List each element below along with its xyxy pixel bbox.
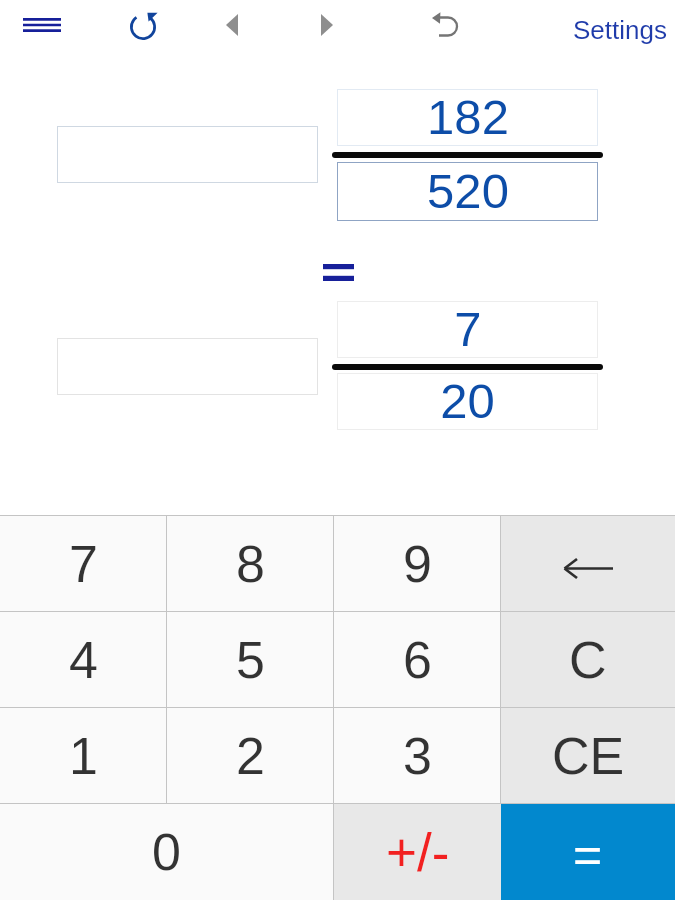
staticText: Settings xyxy=(573,15,667,44)
button[interactable]: Undo xyxy=(419,1,471,49)
button[interactable]: 520 xyxy=(337,162,598,221)
button[interactable]: 5 xyxy=(167,612,333,707)
button[interactable]: 6 xyxy=(334,612,500,707)
staticText: 4 xyxy=(69,631,98,689)
button[interactable]: CE xyxy=(501,708,675,803)
staticText: 7 xyxy=(454,302,482,357)
button[interactable] xyxy=(57,338,318,395)
staticText: +/- xyxy=(386,823,450,882)
staticText: 2 xyxy=(236,727,265,785)
button[interactable]: 0 xyxy=(0,804,333,900)
staticText: 182 xyxy=(427,90,509,145)
staticText: = xyxy=(573,827,603,883)
button[interactable]: 4 xyxy=(0,612,166,707)
button[interactable]: 7 xyxy=(337,301,598,358)
button[interactable]: 7 xyxy=(0,516,166,611)
staticText: CE xyxy=(552,727,625,785)
staticText: 20 xyxy=(440,374,495,429)
staticText: 520 xyxy=(427,164,509,219)
button[interactable]: Settings xyxy=(573,4,667,54)
staticText: 6 xyxy=(403,631,432,689)
button[interactable]: 2 xyxy=(167,708,333,803)
staticText: 1 xyxy=(69,727,98,785)
staticText: 7 xyxy=(69,535,98,593)
staticText: 9 xyxy=(403,535,432,593)
button[interactable]: Next xyxy=(301,1,353,49)
button[interactable] xyxy=(57,126,318,183)
staticText: 3 xyxy=(403,727,432,785)
staticText: 8 xyxy=(236,535,265,593)
button[interactable]: 182 xyxy=(337,89,598,146)
button[interactable]: 8 xyxy=(167,516,333,611)
button[interactable]: C xyxy=(501,612,675,707)
button[interactable]: 1 xyxy=(0,708,166,803)
button[interactable]: Backspace xyxy=(501,516,675,611)
button[interactable]: 20 xyxy=(337,373,598,430)
button[interactable]: 3 xyxy=(334,708,500,803)
button[interactable]: = xyxy=(501,804,675,900)
staticText: 5 xyxy=(236,631,265,689)
button[interactable]: 9 xyxy=(334,516,500,611)
button[interactable]: Previous xyxy=(206,1,258,49)
button[interactable]: +/- xyxy=(334,804,501,900)
button[interactable]: Refresh xyxy=(118,2,169,53)
staticText: 0 xyxy=(152,823,181,881)
button[interactable]: Menu xyxy=(8,3,76,47)
staticText: C xyxy=(569,631,607,689)
